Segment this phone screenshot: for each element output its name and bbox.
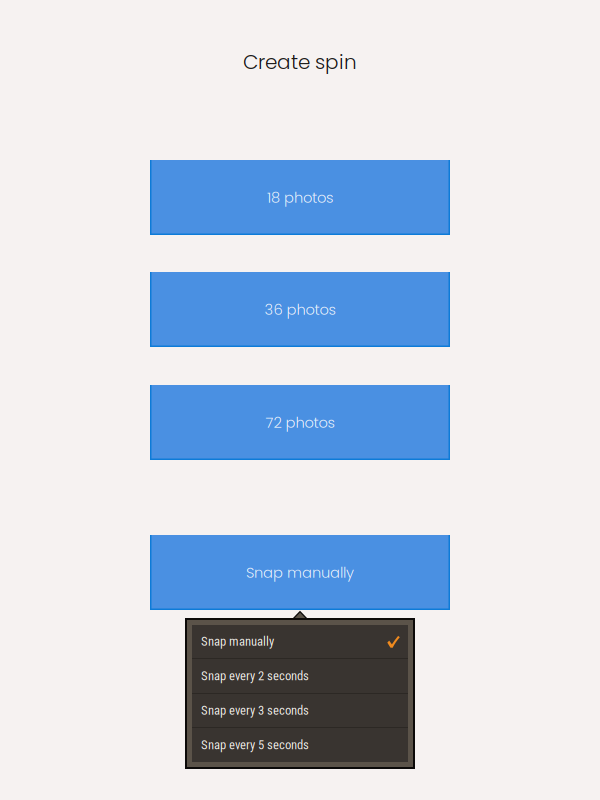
button[interactable]: 72 photos: [150, 385, 450, 460]
button[interactable]: Snap every 2 seconds: [192, 659, 408, 693]
button[interactable]: Snap every 3 seconds: [192, 694, 408, 727]
button[interactable]: 36 photos: [150, 272, 450, 347]
button[interactable]: 18 photos: [150, 160, 450, 235]
staticText: Snap every 2 seconds: [201, 669, 309, 683]
staticText: Snap every 5 seconds: [201, 738, 309, 752]
staticText: 18 photos: [267, 187, 333, 208]
button[interactable]: Snap manually: [192, 625, 408, 658]
staticText: Snap manually: [246, 562, 354, 583]
button[interactable]: Snap manually: [150, 535, 450, 610]
button[interactable]: Snap every 5 seconds: [192, 728, 408, 762]
staticText: Create spin: [243, 48, 357, 76]
staticText: Snap manually: [201, 634, 274, 649]
staticText: 72 photos: [265, 412, 334, 433]
staticText: Snap every 3 seconds: [201, 703, 309, 718]
staticText: 36 photos: [264, 299, 335, 320]
